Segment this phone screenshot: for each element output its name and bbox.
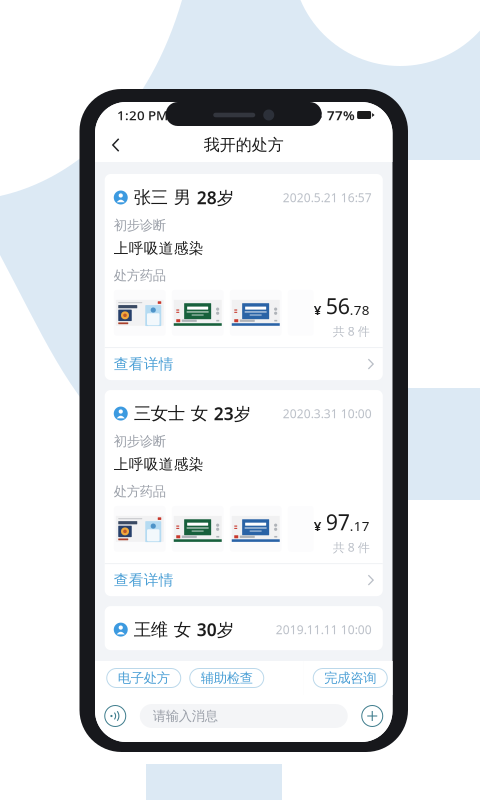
button[interactable]: 查看详情 [105,348,383,380]
button[interactable]: 请输入消息 [140,704,348,728]
staticText: 男 [174,187,191,208]
staticText: 上呼吸道感染 [114,455,204,473]
staticText: 2020.5.21 16:57 [283,189,372,205]
staticText: 共 8 件 [333,323,370,339]
button[interactable]: Voice message [105,705,126,726]
button[interactable]: 查看详情 [105,564,383,596]
staticText: .78 [350,301,370,319]
staticText: .17 [350,517,370,535]
staticText: 56 [326,292,350,320]
staticText: 2019.11.11 10:00 [276,622,372,637]
staticText: 请输入消息 [153,708,218,724]
staticText: 30岁 [197,618,234,641]
staticText: 完成咨询 [324,670,376,686]
staticText: 张三 [134,187,168,208]
button[interactable]: 电子处方 [107,668,181,687]
staticText: 女 [191,403,208,424]
staticText: 查看详情 [114,571,174,589]
staticText: 共 8 件 [333,539,370,555]
staticText: 电子处方 [118,670,170,686]
button[interactable]: 辅助检查 [190,668,264,687]
button[interactable]: Back [103,131,128,159]
staticText: 处方药品 [114,267,166,284]
staticText: 1:20 PM [117,106,168,124]
button[interactable]: More options [362,705,383,726]
staticText: 23岁 [214,402,251,425]
staticText: 28岁 [197,186,234,209]
staticText: 查看详情 [114,355,174,373]
staticText: 王维 [134,619,168,640]
staticText: ¥ [314,517,322,535]
staticText: 女 [174,619,191,640]
staticText: 辅助检查 [201,670,253,686]
staticText: 97 [326,508,350,536]
staticText: 我开的处方 [204,135,284,155]
staticText: 上呼吸道感染 [114,239,204,257]
staticText: 2020.3.31 10:00 [283,406,372,421]
staticText: 77% [327,106,355,124]
button[interactable]: 完成咨询 [313,668,387,687]
staticText: ¥ [314,301,322,319]
staticText: 初步诊断 [114,433,166,449]
staticText: 处方药品 [114,483,166,500]
staticText: 三女士 [134,403,185,424]
staticText: 初步诊断 [114,217,166,233]
